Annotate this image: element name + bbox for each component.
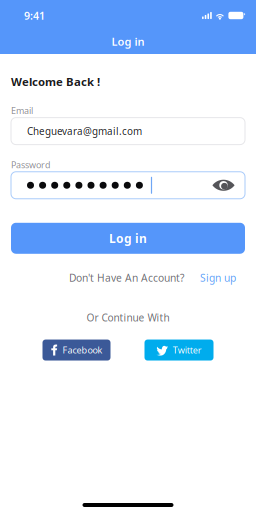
button[interactable]: Sign up — [184, 271, 236, 285]
staticText: 9:41 — [24, 8, 45, 23]
staticText: Twitter — [173, 344, 202, 356]
staticText: Log in — [109, 230, 147, 246]
staticText: Or Continue With — [86, 311, 169, 325]
staticText: Password — [11, 159, 50, 171]
staticText: Sign up — [200, 271, 236, 285]
staticText: Welcome Back ! — [11, 74, 100, 89]
staticText: Facebook — [62, 344, 102, 356]
staticText: Cheguevara@gmail.com — [27, 124, 142, 138]
button[interactable]: Facebook — [42, 340, 110, 361]
staticText: Log in — [111, 34, 144, 49]
button[interactable]: Log in — [11, 223, 245, 254]
staticText: Don't Have An Account? — [69, 271, 184, 285]
staticText: Email — [11, 104, 33, 117]
button[interactable]: Twitter — [144, 340, 213, 361]
